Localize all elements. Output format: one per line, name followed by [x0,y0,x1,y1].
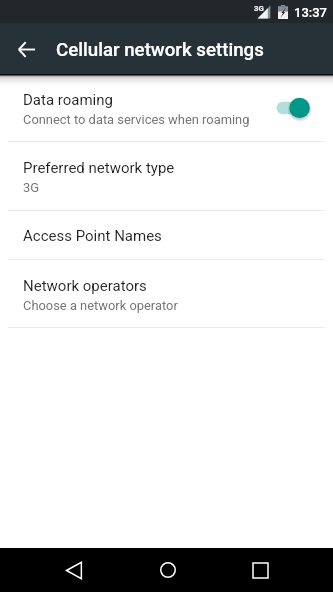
staticText: Choose a network operator [23,298,178,313]
staticText: 3G [23,180,40,195]
staticText: 13:37 [294,5,327,20]
staticText: Data roaming [23,91,113,109]
staticText: Cellular network settings [56,39,264,61]
staticText: Preferred network type [23,159,175,177]
button[interactable]: Navigate up [10,33,42,65]
staticText: Network operators [23,277,147,295]
button[interactable]: Access Point Names [0,211,333,259]
staticText: 3G [254,4,264,13]
button[interactable]: Recent apps [234,548,286,592]
staticText: Connect to data services when roaming [23,112,250,127]
button[interactable]: Preferred network type [0,142,333,210]
staticText: Access Point Names [23,227,162,245]
button[interactable]: Data roaming [0,74,333,141]
button[interactable]: Home [142,548,194,592]
button[interactable]: Back [48,548,100,592]
button[interactable]: Data roaming [273,93,317,123]
button[interactable]: Network operators [0,260,333,327]
